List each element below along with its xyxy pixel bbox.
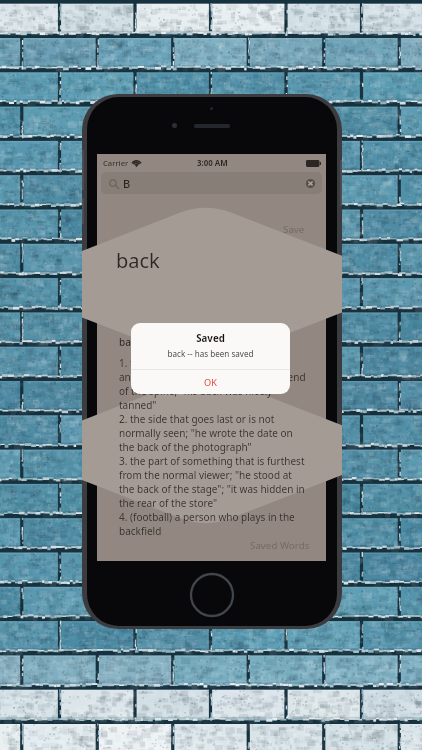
staticText: tanned"	[119, 398, 157, 412]
staticText: Saved	[131, 332, 290, 345]
staticText: the back of the stage"; "it was hidden i…	[119, 482, 305, 496]
staticText: backfield	[119, 524, 162, 538]
button[interactable]: B	[101, 172, 322, 194]
button[interactable]: OK	[131, 370, 290, 394]
staticText: 3. the part of something that is furthes…	[119, 454, 305, 468]
button[interactable]: Saved Words	[244, 535, 316, 556]
staticText: and extending from the neck to the end	[119, 370, 306, 384]
staticText: the rear of the store"	[119, 496, 218, 510]
staticText: back	[119, 335, 142, 349]
button[interactable]: Clear search	[305, 178, 316, 189]
staticText: the back of the photograph"	[119, 440, 252, 454]
staticText: 1. the posterior part of a human	[119, 356, 270, 370]
staticText: B	[123, 176, 131, 191]
staticText: Saved Words	[250, 539, 310, 552]
staticText: from the normal viewer; "he stood at	[119, 468, 292, 482]
staticText: back	[116, 247, 160, 274]
staticText: Save	[283, 223, 305, 236]
button[interactable]: Save	[277, 219, 311, 240]
staticText: back -- has been saved	[131, 348, 290, 359]
staticText: OK	[204, 376, 217, 389]
staticText: 3:00 AM	[197, 158, 228, 169]
staticText: 4. (football) a person who plays in the	[119, 510, 295, 524]
staticText: of the spine; "his back was nicely	[119, 384, 273, 398]
staticText: 2. the side that goes last or is not	[119, 412, 275, 426]
staticText: normally seen; "he wrote the date on	[119, 426, 293, 440]
staticText: Carrier	[103, 158, 129, 168]
